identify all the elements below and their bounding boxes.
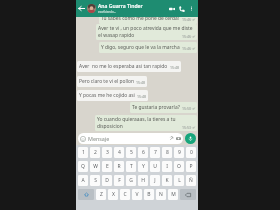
staticText: C: [123, 191, 127, 198]
button[interactable]: B: [144, 189, 154, 200]
staticText: T: [130, 163, 133, 170]
staticText: 4: [118, 149, 121, 156]
staticText: 15:46: [182, 34, 191, 39]
staticText: M: [171, 191, 176, 198]
button[interactable]: V: [132, 189, 142, 200]
button[interactable]: Yo cuando quieraaas, la tieres a tu: [95, 115, 197, 131]
staticText: N: [159, 191, 163, 198]
button[interactable]: Video call: [166, 3, 177, 14]
staticText: Q: [81, 163, 85, 170]
button[interactable]: R: [114, 161, 124, 172]
staticText: 8: [166, 149, 169, 156]
staticText: 15:46: [182, 46, 191, 51]
button[interactable]: Te gustaria provarla?: [130, 102, 197, 113]
button[interactable]: S: [90, 175, 100, 186]
button[interactable]: More options: [187, 4, 196, 13]
button[interactable]: 7: [150, 147, 160, 158]
button[interactable]: 5: [126, 147, 136, 158]
button[interactable]: Y pocas me he cojido asi: [77, 90, 148, 101]
button[interactable]: Y digo, seguro que le va la marcha: [99, 42, 197, 53]
staticText: 7: [154, 149, 157, 156]
staticText: Yo cuando quieraaas, la tieres a tu: [97, 116, 176, 123]
other: Backspace: [185, 192, 191, 198]
staticText: 15:53: [182, 125, 191, 130]
button[interactable]: P: [186, 161, 196, 172]
button[interactable]: I: [162, 161, 172, 172]
staticText: 3: [106, 149, 109, 156]
button[interactable]: 8: [162, 147, 172, 158]
button[interactable]: Q: [78, 161, 88, 172]
button[interactable]: Back: [77, 4, 86, 13]
button[interactable]: 6: [138, 147, 148, 158]
staticText: 0: [190, 149, 193, 156]
staticText: 15:48: [136, 80, 145, 85]
staticText: disposicion: [97, 123, 123, 130]
staticText: 15:48: [170, 65, 179, 70]
button[interactable]: T: [126, 161, 136, 172]
staticText: Y: [142, 163, 145, 170]
button[interactable]: G: [126, 175, 136, 186]
button[interactable]: K: [162, 175, 172, 186]
staticText: A: [81, 177, 85, 184]
staticText: el wasap rapido: [98, 32, 135, 39]
staticText: 2: [94, 149, 97, 156]
staticText: 5: [130, 149, 133, 156]
staticText: 15:46: [182, 17, 191, 22]
staticText: 1: [82, 149, 85, 156]
staticText: Pero claro te vi el pollon: [79, 78, 134, 85]
staticText: Mensaje: [88, 135, 110, 142]
button[interactable]: J: [150, 175, 160, 186]
staticText: 15:50: [182, 106, 191, 111]
button[interactable]: C: [120, 189, 130, 200]
staticText: I: [166, 163, 168, 170]
button[interactable]: H: [138, 175, 148, 186]
button[interactable]: O: [174, 161, 184, 172]
button[interactable]: 1: [78, 147, 88, 158]
button[interactable]: X: [108, 189, 118, 200]
button[interactable]: 9: [174, 147, 184, 158]
button[interactable]: A: [78, 175, 88, 186]
button[interactable]: Backspace: [180, 189, 196, 200]
staticText: R: [117, 163, 121, 170]
button[interactable]: 0: [186, 147, 196, 158]
button[interactable]: Ñ: [186, 175, 196, 186]
staticText: B: [147, 191, 151, 198]
button[interactable]: Voice message: [185, 133, 196, 144]
staticText: V: [135, 191, 139, 198]
button[interactable]: Shift: [78, 189, 94, 200]
staticText: Z: [100, 191, 103, 198]
button[interactable]: Call: [177, 4, 187, 14]
staticText: W: [93, 163, 98, 170]
button[interactable]: 2: [90, 147, 100, 158]
button[interactable]: Pero claro te vi el pollon: [77, 76, 147, 87]
button[interactable]: Y: [138, 161, 148, 172]
staticText: X: [112, 191, 115, 198]
button[interactable]: Profile photo: [87, 4, 96, 13]
button[interactable]: Emoji: [78, 133, 183, 144]
staticText: Y digo, seguro que le va la marcha: [101, 44, 180, 51]
button[interactable]: N: [156, 189, 166, 200]
button[interactable]: W: [90, 161, 100, 172]
button[interactable]: Tu sabes como me pone de cerda!: [99, 13, 197, 24]
button[interactable]: U: [150, 161, 160, 172]
staticText: Ñ: [189, 177, 193, 184]
button[interactable]: 3: [102, 147, 112, 158]
button[interactable]: Aver te vi , un poco atrevida que me dis…: [96, 24, 197, 40]
staticText: D: [105, 177, 109, 184]
staticText: L: [178, 177, 181, 184]
button[interactable]: D: [102, 175, 112, 186]
button[interactable]: L: [174, 175, 184, 186]
button[interactable]: 4: [114, 147, 124, 158]
button[interactable]: E: [102, 161, 112, 172]
staticText: E: [106, 163, 109, 170]
button[interactable]: F: [114, 175, 124, 186]
button[interactable]: M: [168, 189, 178, 200]
button[interactable]: Aver no me lo esperaba asi tan rapido: [77, 61, 181, 72]
staticText: S: [94, 177, 97, 184]
staticText: Aver no me lo esperaba asi tan rapido: [79, 63, 168, 70]
staticText: O: [177, 163, 181, 170]
staticText: 6: [142, 149, 145, 156]
button[interactable]: Z: [96, 189, 106, 200]
staticText: U: [153, 163, 157, 170]
other: Attach: [169, 136, 174, 141]
